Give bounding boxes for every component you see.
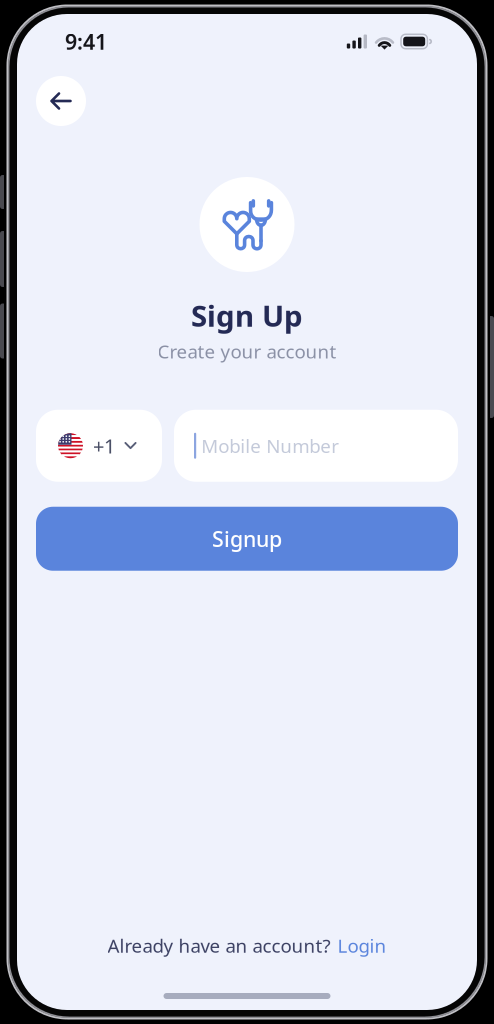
staticText: Signup <box>212 525 282 553</box>
staticText: Sign Up <box>191 296 303 335</box>
staticText: 9:41 <box>65 27 107 56</box>
button[interactable]: Back <box>36 76 86 126</box>
button[interactable]: Country code +1 <box>36 410 162 482</box>
staticText: Create your account <box>157 339 336 364</box>
staticText: Already have an account? <box>107 933 330 958</box>
staticText: +1 <box>93 432 115 459</box>
button[interactable]: Login <box>337 933 386 958</box>
staticText: Login <box>337 933 386 958</box>
staticText: Mobile Number <box>201 433 339 458</box>
button[interactable]: Signup <box>36 507 458 571</box>
button[interactable]: Mobile Number <box>174 410 458 482</box>
